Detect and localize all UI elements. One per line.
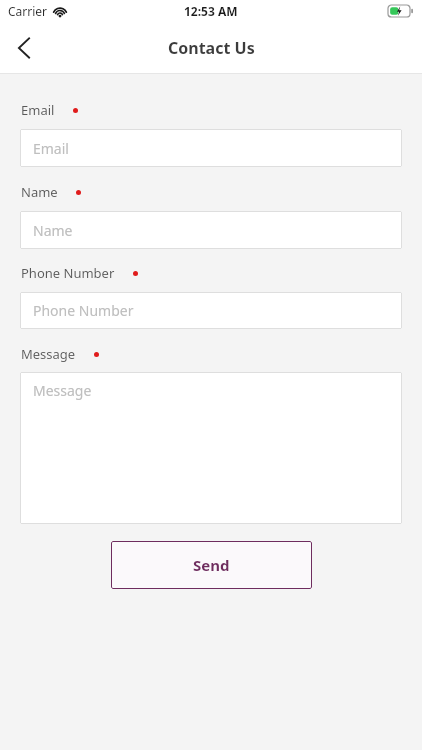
button[interactable]: Name [20, 211, 402, 249]
staticText: Message [33, 381, 92, 400]
staticText: Email [33, 139, 69, 158]
staticText: Name [21, 183, 58, 201]
button[interactable]: Message [20, 372, 402, 524]
button[interactable]: Back [0, 24, 48, 72]
staticText: Phone Number [33, 301, 134, 320]
button[interactable]: Send [111, 541, 312, 589]
staticText: Email [21, 101, 55, 119]
staticText: Contact Us [168, 37, 255, 59]
button[interactable]: Email [20, 129, 402, 167]
staticText: Carrier [8, 3, 48, 19]
button[interactable]: Phone Number [20, 292, 402, 329]
staticText: Name [33, 221, 73, 240]
staticText: Send [193, 555, 230, 575]
staticText: 12:53 AM [184, 3, 238, 19]
staticText: Phone Number [21, 264, 115, 282]
staticText: Message [21, 345, 76, 363]
